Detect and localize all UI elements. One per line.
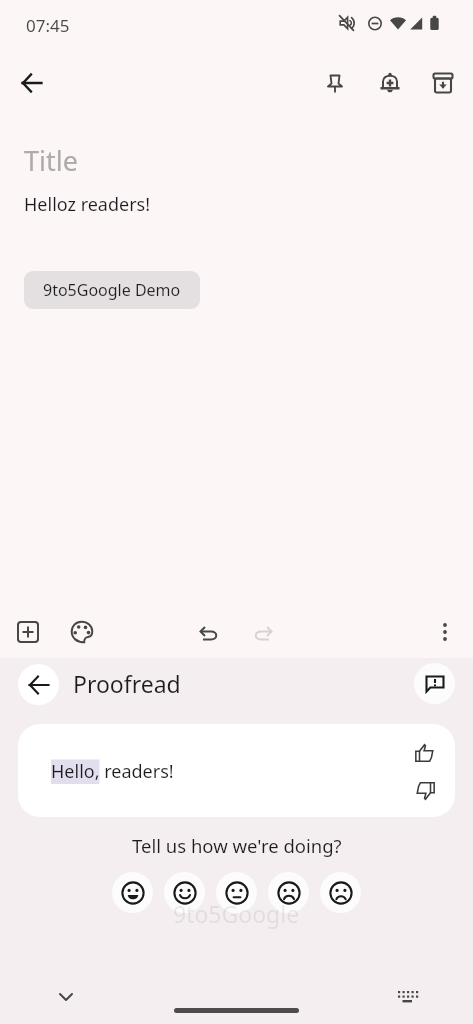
button[interactable]: Rating 1	[320, 872, 361, 913]
button[interactable]: More options	[421, 608, 469, 656]
button[interactable]: Hide keyboard	[42, 974, 89, 1020]
staticText: 9to5Google Demo	[43, 279, 181, 301]
button[interactable]: Thumbs down	[407, 773, 443, 809]
button[interactable]: Home	[174, 1008, 299, 1013]
staticText: Proofread	[73, 668, 181, 699]
staticText: 07:45	[26, 14, 70, 37]
button[interactable]: Archive	[419, 59, 467, 107]
button[interactable]: Back	[18, 664, 59, 705]
button[interactable]: Helloz readers!	[24, 192, 449, 217]
button[interactable]: Back	[8, 59, 56, 107]
staticText: Title	[24, 142, 78, 179]
button[interactable]: Hello, readers!	[18, 724, 455, 817]
button[interactable]: Rating 5	[112, 872, 153, 913]
button[interactable]: Add	[4, 608, 52, 656]
staticText: Hello, readers!	[51, 759, 174, 784]
button[interactable]: Title	[24, 142, 449, 179]
staticText: Tell us how we're doing?	[132, 833, 342, 858]
button[interactable]: Thumbs up	[407, 735, 443, 771]
button[interactable]: Pin	[311, 59, 359, 107]
button[interactable]: Add reminder	[366, 59, 414, 107]
button[interactable]: Redo	[239, 608, 287, 656]
button[interactable]: Rating 2	[268, 872, 309, 913]
staticText: 9to5Google	[173, 898, 300, 929]
button[interactable]: 9to5Google Demo	[24, 271, 200, 309]
button[interactable]: Rating 4	[164, 872, 205, 913]
button[interactable]: Rating 3	[216, 872, 257, 913]
button[interactable]: Send feedback	[414, 663, 455, 704]
button[interactable]: Color palette	[58, 608, 106, 656]
button[interactable]: Undo	[185, 608, 233, 656]
button[interactable]: Proofread	[73, 668, 181, 699]
staticText: Helloz readers!	[24, 192, 151, 217]
button[interactable]: Switch keyboard	[383, 973, 430, 1019]
